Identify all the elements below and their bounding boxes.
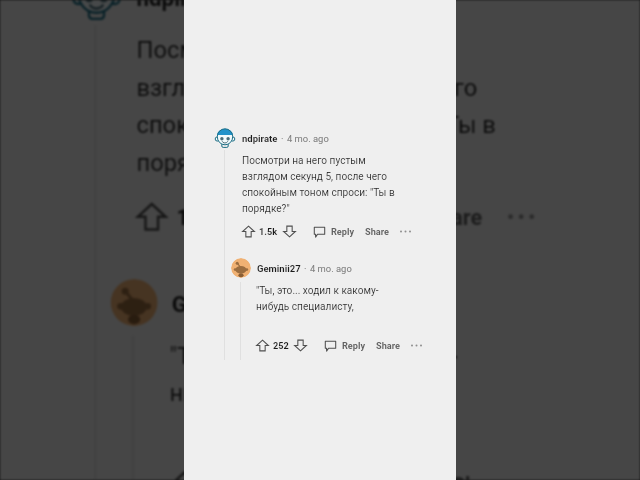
- button[interactable]: ndpirate: [242, 133, 329, 144]
- button[interactable]: Downvote: [233, 201, 263, 232]
- staticText: ndpirate: [242, 133, 278, 144]
- staticText: Share: [452, 472, 508, 480]
- staticText: 4 mo. ago: [310, 263, 352, 274]
- button[interactable]: Upvote: [242, 225, 255, 238]
- button[interactable]: Share: [426, 204, 482, 230]
- button[interactable]: Reply: [342, 340, 366, 351]
- staticText: ·: [304, 263, 307, 274]
- staticText: 4 mo. ago: [296, 291, 395, 317]
- button[interactable]: Upvote: [136, 201, 167, 232]
- button[interactable]: Geminii27: [172, 291, 395, 317]
- staticText: Share: [426, 204, 482, 230]
- staticText: 1.5k: [259, 226, 278, 237]
- staticText: Geminii27: [257, 263, 301, 274]
- button[interactable]: Upvote: [256, 339, 269, 352]
- staticText: 252: [273, 340, 289, 351]
- button[interactable]: Reply: [346, 204, 402, 230]
- button[interactable]: More options: [400, 225, 411, 238]
- staticText: ndpirate: [136, 0, 221, 11]
- button[interactable]: Comment: [303, 201, 334, 232]
- button[interactable]: More options: [411, 339, 422, 352]
- button[interactable]: Reply: [331, 226, 355, 237]
- staticText: ·: [282, 291, 289, 317]
- button[interactable]: Comment: [324, 339, 337, 352]
- button[interactable]: Share: [365, 226, 389, 237]
- staticText: "Ты, это... ходил к какому- нибудь специ…: [169, 343, 569, 411]
- staticText: Share: [365, 226, 389, 237]
- staticText: "Ты, это... ходил к какому- нибудь специ…: [256, 285, 426, 314]
- button[interactable]: Upvote: [169, 470, 200, 480]
- button[interactable]: Downvote: [294, 339, 307, 352]
- staticText: 4 mo. ago: [287, 133, 329, 144]
- button[interactable]: Geminii27: [257, 263, 352, 274]
- staticText: 1.5k: [176, 204, 221, 230]
- button[interactable]: Share: [452, 472, 508, 480]
- staticText: Посмотри на него пустым взглядом секунд …: [242, 155, 412, 216]
- button[interactable]: More options: [534, 470, 560, 480]
- staticText: Geminii27: [172, 291, 275, 317]
- staticText: Reply: [342, 340, 366, 351]
- button[interactable]: Share: [376, 340, 400, 351]
- button[interactable]: More options: [508, 201, 534, 232]
- staticText: Share: [376, 340, 400, 351]
- button[interactable]: Downvote: [283, 225, 296, 238]
- staticText: Reply: [346, 204, 402, 230]
- staticText: Reply: [331, 226, 355, 237]
- staticText: Посмотри на него пустым взглядом секунд …: [136, 37, 536, 180]
- staticText: ·: [281, 133, 284, 144]
- button[interactable]: Comment: [313, 225, 326, 238]
- button[interactable]: ndpirate: [136, 0, 341, 11]
